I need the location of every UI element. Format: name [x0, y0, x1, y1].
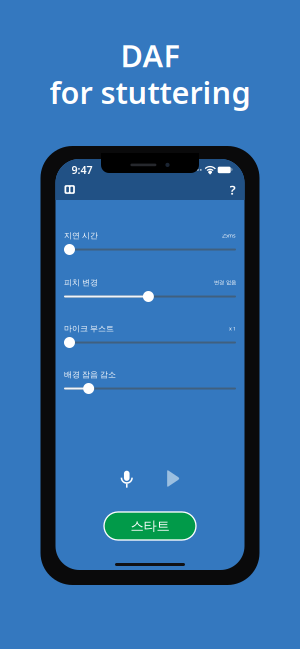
staticText: 지연 시간 [64, 231, 98, 240]
staticText: x 1 [229, 325, 236, 332]
staticText: 9:47 [71, 163, 92, 177]
button[interactable]: Play [163, 464, 184, 490]
button[interactable]: Guide [57, 179, 82, 200]
staticText: 25ms [222, 232, 236, 239]
staticText: 스타트 [130, 518, 169, 534]
staticText: 변경 없음 [214, 279, 236, 286]
staticText: DAF [120, 35, 179, 76]
button[interactable]: Help [222, 177, 242, 202]
button[interactable]: 스타트 [104, 512, 196, 540]
button[interactable]: Microphone [115, 465, 138, 490]
staticText: 마이크 부스트 [64, 324, 114, 333]
staticText: 배경 잡음 감소 [64, 370, 116, 379]
staticText: 피치 변경 [64, 278, 98, 287]
staticText: ? [229, 181, 235, 198]
staticText: for stuttering [49, 72, 250, 112]
